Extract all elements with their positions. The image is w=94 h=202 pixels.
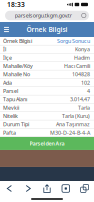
button[interactable]: Back (0, 181, 19, 196)
staticText: parselsorgu.tkgm.gov.tr (15, 12, 72, 19)
staticText: Ana Taşınmaz (56, 121, 90, 128)
staticText: 3.014,47 (70, 96, 90, 103)
button[interactable]: Menü (0, 22, 13, 37)
staticText: M30-D-24-B-4-A (50, 129, 90, 136)
staticText: Mahalle No (3, 71, 30, 78)
staticText: Mevkii (3, 104, 19, 111)
staticText: Tapu Alanı (3, 96, 27, 103)
button[interactable]: Forward (19, 181, 38, 196)
staticText: Örnek Bilgisi (3, 37, 32, 44)
staticText: Sorgu Sonucu (57, 37, 90, 44)
staticText: Mahalle/Köy (3, 62, 33, 69)
staticText: Konya (75, 46, 90, 53)
staticText: Örnek Bilgisi (26, 25, 67, 34)
staticText: 4 (87, 87, 90, 94)
staticText: İlçe (3, 54, 12, 61)
staticText: Tarla (Kuru) (62, 112, 90, 119)
staticText: Durum Tipi (3, 121, 29, 128)
button[interactable]: Bookmarks (56, 181, 75, 196)
staticText: Tarla (78, 104, 90, 111)
staticText: İl (3, 46, 6, 53)
staticText: 102 (81, 79, 90, 86)
button[interactable]: parselsorgu.tkgm.gov.tr (0, 9, 94, 22)
staticText: Hadim (74, 54, 90, 61)
staticText: 18:33 (7, 0, 25, 9)
staticText: Hacı Camili (64, 62, 90, 69)
staticText: Nitelik (3, 112, 18, 119)
button[interactable]: Share (38, 181, 56, 196)
button[interactable]: Parselden Ara (0, 137, 94, 150)
staticText: Parselden Ara (29, 140, 64, 147)
button[interactable]: Tabs (75, 181, 94, 196)
staticText: Pafta (3, 129, 16, 136)
staticText: Parsel (3, 87, 18, 94)
staticText: Ada (3, 79, 12, 86)
staticText: 104828 (72, 71, 90, 78)
